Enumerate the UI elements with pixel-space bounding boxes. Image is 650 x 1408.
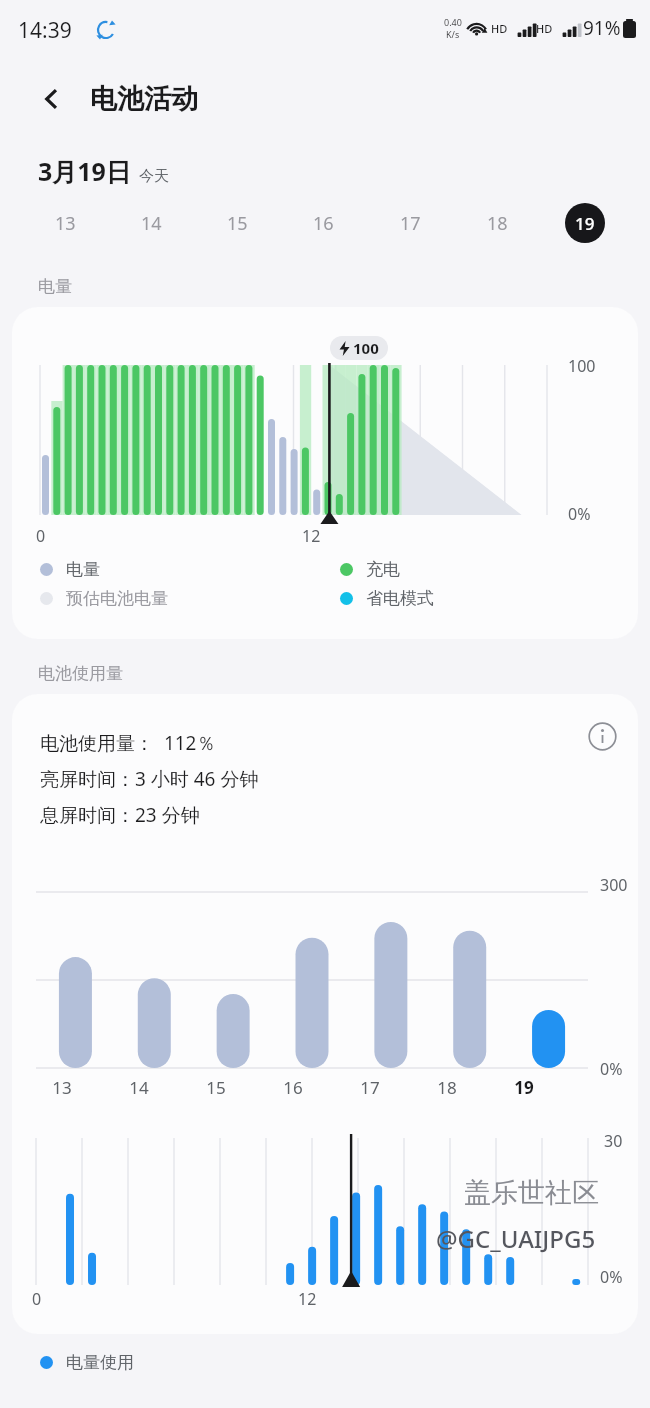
button[interactable]: 15 [194, 188, 280, 258]
staticText: 19 [514, 1076, 534, 1099]
staticText: 16 [283, 1076, 303, 1099]
staticText: 13 [55, 211, 76, 236]
staticText: 0% [568, 503, 591, 525]
button[interactable]: 14 [108, 188, 194, 258]
button[interactable]: 19 [541, 188, 628, 258]
button[interactable]: 18 [454, 188, 541, 258]
staticText: 18 [437, 1076, 457, 1099]
button[interactable]: 16 [280, 188, 367, 258]
staticText: HD [536, 21, 553, 36]
staticText: 100 [568, 355, 596, 377]
staticText: 预估电池电量 [66, 588, 168, 609]
staticText: 0% [600, 1266, 623, 1288]
button[interactable]: 13 [22, 188, 108, 258]
staticText: 3月19日 [38, 154, 131, 188]
staticText: 12 [298, 1288, 317, 1310]
staticText: 电量 [38, 276, 72, 297]
staticText: 充电 [366, 559, 400, 580]
staticText: 0 [36, 525, 46, 547]
staticText: 14:39 [18, 16, 72, 45]
staticText: 30 [604, 1130, 623, 1152]
staticText: HD [491, 21, 508, 36]
staticText: 亮屏时间：3 小时 46 分钟 [40, 766, 259, 792]
staticText: 13 [52, 1076, 72, 1099]
staticText: 14 [141, 211, 162, 236]
staticText: 15 [206, 1076, 226, 1099]
staticText: 电量 [66, 559, 100, 580]
staticText: 300 [600, 874, 628, 896]
staticText: 16 [313, 211, 334, 236]
staticText: 17 [360, 1076, 380, 1099]
staticText: 省电模式 [366, 588, 434, 609]
button[interactable]: 17 [367, 188, 454, 258]
button[interactable]: Information [580, 714, 624, 758]
staticText: 0.40 [444, 16, 462, 28]
staticText: K/s [446, 28, 460, 40]
staticText: 电池使用量 [38, 663, 123, 684]
staticText: 19 [575, 212, 595, 235]
staticText: 100 [353, 338, 379, 358]
staticText: 18 [487, 211, 508, 236]
staticText: 0% [600, 1058, 623, 1080]
staticText: 电量使用 [66, 1352, 134, 1373]
staticText: 15 [227, 211, 248, 236]
staticText: @GC_UAIJPG5 [436, 1222, 596, 1255]
staticText: 91% [583, 15, 621, 41]
staticText: 电池活动 [90, 82, 198, 116]
staticText: 电池使用量： 112％ [40, 730, 216, 756]
button[interactable]: Back [30, 77, 74, 121]
staticText: 今天 [139, 167, 169, 186]
staticText: 息屏时间：23 分钟 [40, 802, 200, 828]
staticText: 14 [129, 1076, 149, 1099]
staticText: 0 [32, 1288, 42, 1310]
staticText: 盖乐世社区 [464, 1176, 599, 1210]
staticText: 12 [302, 525, 321, 547]
button[interactable]: 100 [12, 307, 638, 639]
staticText: 17 [400, 211, 421, 236]
